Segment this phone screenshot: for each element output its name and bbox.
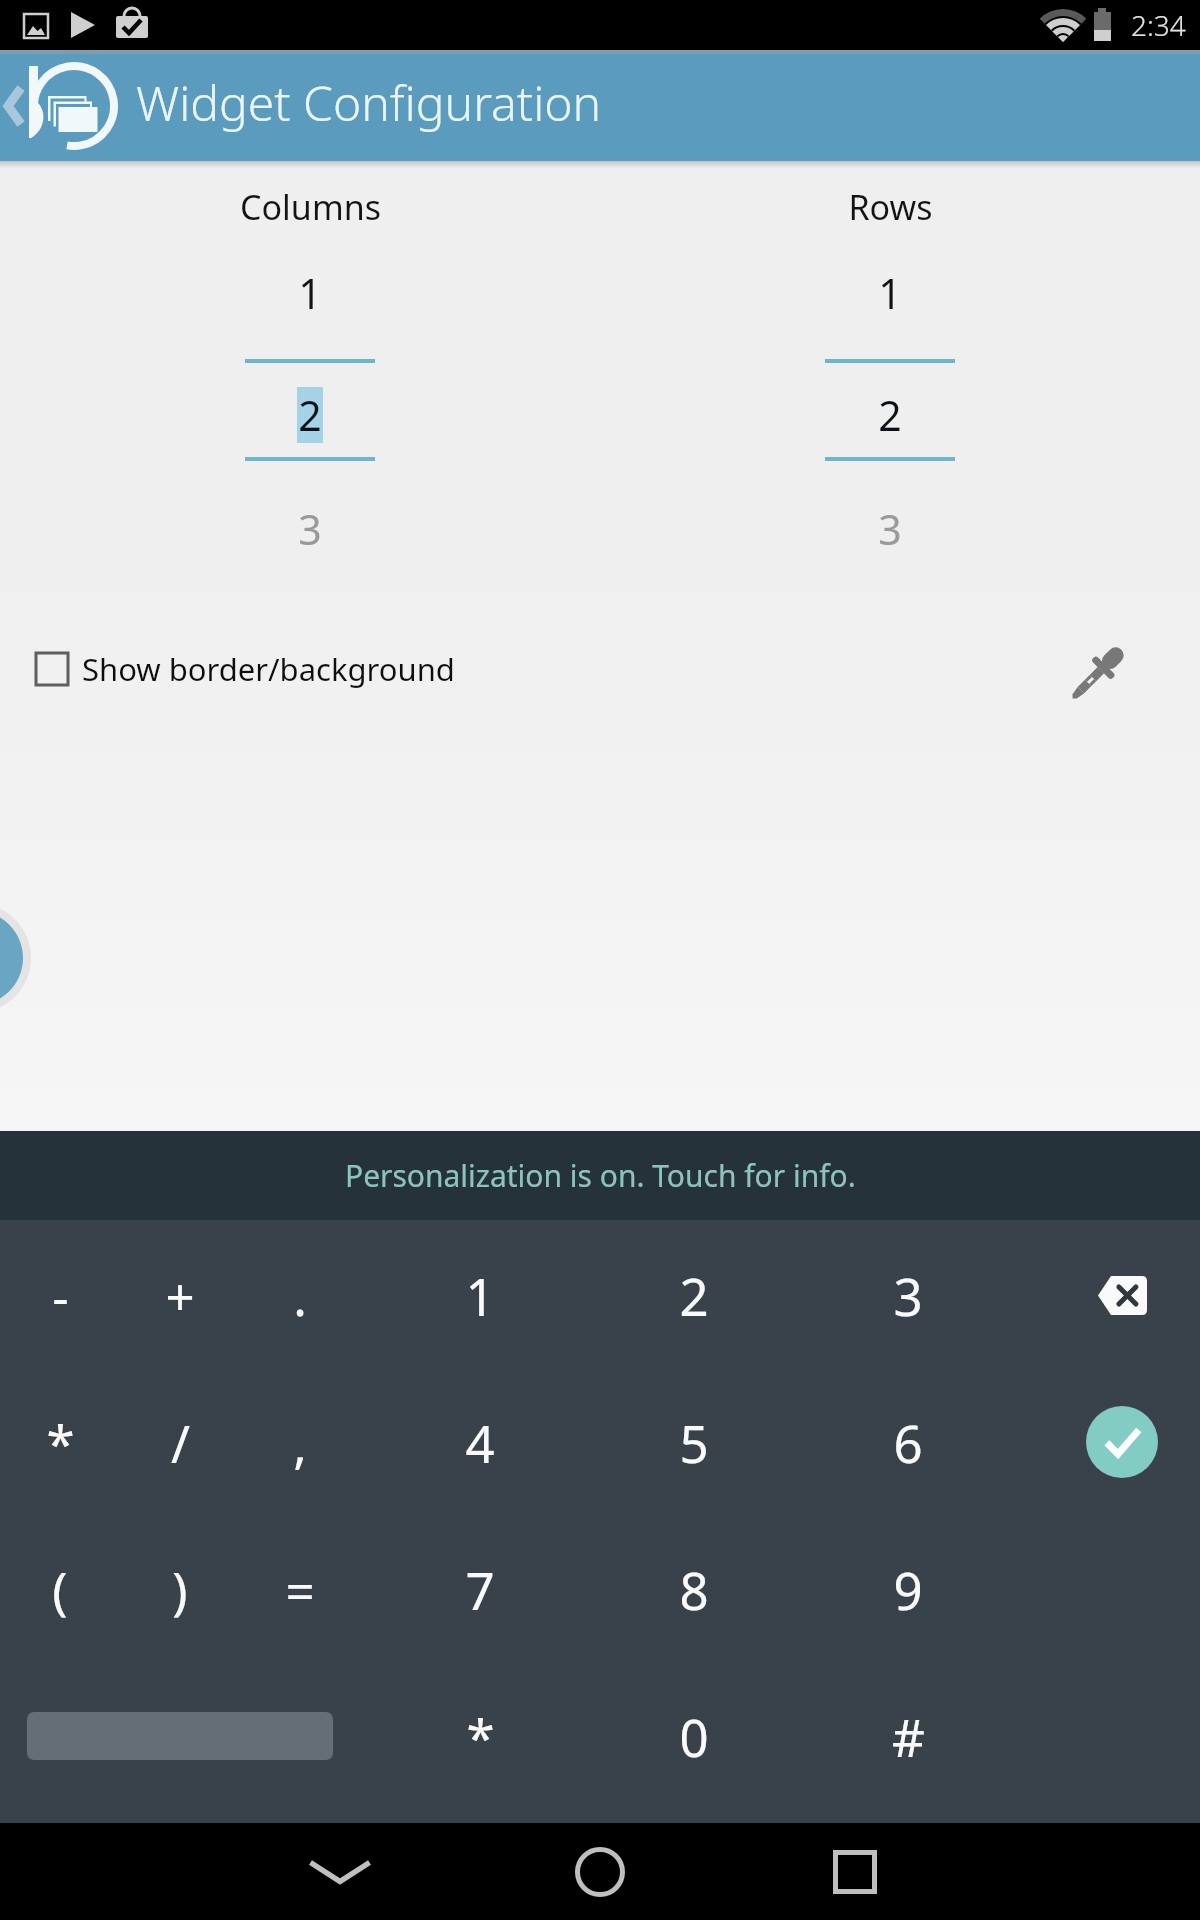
staticText: Widget Configuration xyxy=(136,70,602,135)
button[interactable]: * xyxy=(420,1676,540,1796)
staticText: 1 xyxy=(298,265,322,317)
button[interactable]: 2 xyxy=(730,386,1050,444)
staticText: 2 xyxy=(878,387,902,443)
button[interactable]: * xyxy=(0,1382,120,1502)
button[interactable]: Pick colour xyxy=(1058,633,1138,713)
button[interactable]: 9 xyxy=(848,1529,968,1649)
staticText: . xyxy=(293,1261,307,1330)
staticText: Columns xyxy=(240,184,381,230)
staticText: - xyxy=(52,1261,69,1330)
staticText: 2 xyxy=(298,387,322,443)
button[interactable]: / xyxy=(120,1382,240,1502)
staticText: 1 xyxy=(465,1261,495,1330)
staticText: 2 xyxy=(679,1261,709,1330)
button[interactable]: + xyxy=(120,1235,240,1355)
staticText: * xyxy=(466,1702,495,1771)
button[interactable]: - xyxy=(0,1235,120,1355)
button[interactable]: , xyxy=(240,1382,360,1502)
button[interactable]: Done xyxy=(1062,1382,1182,1502)
button[interactable]: Up xyxy=(0,50,1200,161)
staticText: Show border/background xyxy=(82,648,455,690)
staticText: 3 xyxy=(878,501,902,553)
button[interactable]: 6 xyxy=(848,1382,968,1502)
staticText: ) xyxy=(172,1555,188,1624)
staticText: + xyxy=(165,1261,195,1330)
button[interactable]: 1 xyxy=(420,1235,540,1355)
staticText: 3 xyxy=(893,1261,923,1330)
staticText: Rows xyxy=(848,184,933,230)
staticText: 4 xyxy=(465,1408,495,1477)
staticText: 3 xyxy=(298,501,322,553)
staticText: Personalization is on. Touch for info. xyxy=(345,1155,856,1196)
staticText: 1 xyxy=(878,265,902,317)
button[interactable]: 5 xyxy=(634,1382,754,1502)
staticText: 5 xyxy=(679,1408,709,1477)
button[interactable]: 8 xyxy=(634,1529,754,1649)
staticText: 8 xyxy=(679,1555,709,1624)
button[interactable]: Home xyxy=(540,1823,660,1920)
button[interactable]: = xyxy=(240,1529,360,1649)
staticText: 6 xyxy=(893,1408,923,1477)
button[interactable]: Hide keyboard xyxy=(280,1823,400,1920)
staticText: , xyxy=(293,1408,307,1477)
staticText: 7 xyxy=(465,1555,495,1624)
button[interactable]: 7 xyxy=(420,1529,540,1649)
button[interactable]: 3 xyxy=(848,1235,968,1355)
button[interactable]: ( xyxy=(0,1529,120,1649)
button[interactable]: 4 xyxy=(420,1382,540,1502)
staticText: * xyxy=(46,1408,75,1477)
button[interactable]: Recent apps xyxy=(795,1823,915,1920)
button[interactable]: Personalization is on. Touch for info. xyxy=(0,1131,1200,1220)
button[interactable]: 2 xyxy=(150,386,470,444)
staticText: 9 xyxy=(893,1555,923,1624)
button[interactable]: Show border/background xyxy=(0,634,1200,704)
staticText: # xyxy=(892,1702,925,1771)
staticText: / xyxy=(171,1408,190,1477)
staticText: = xyxy=(285,1555,315,1624)
staticText: ( xyxy=(52,1555,68,1624)
button[interactable]: Backspace xyxy=(1062,1235,1182,1355)
staticText: 2:34 xyxy=(1131,6,1186,44)
button[interactable]: # xyxy=(848,1676,968,1796)
button[interactable]: . xyxy=(240,1235,360,1355)
button[interactable]: 2 xyxy=(634,1235,754,1355)
button[interactable]: Colour swatch xyxy=(0,903,31,1013)
button[interactable]: 0 xyxy=(634,1676,754,1796)
staticText: 0 xyxy=(679,1702,709,1771)
button[interactable]: ) xyxy=(120,1529,240,1649)
